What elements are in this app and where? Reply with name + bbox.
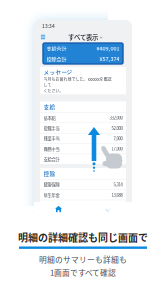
staticText: 13,688 <box>111 192 122 198</box>
staticText: 5,314 <box>113 181 122 187</box>
staticText: ¥409,001 <box>96 44 119 52</box>
staticText: 明細の詳細確認も同じ画面で <box>18 230 148 244</box>
staticText: 52,000 <box>111 125 122 131</box>
staticText: 役職手当 <box>44 125 60 131</box>
staticText: 残業手当 <box>44 135 60 141</box>
staticText: 明細のサマリーも詳細も <box>39 254 127 265</box>
staticText: 健康保険 <box>44 181 60 187</box>
staticText: 7,000 <box>113 135 122 141</box>
staticText: ¥57,374 <box>99 55 119 63</box>
staticText: 17,000 <box>111 146 122 152</box>
button[interactable]: 給与明細 <box>34 202 83 216</box>
staticText: 雇用保険料 <box>44 202 64 208</box>
staticText: 控除合計 <box>47 55 67 62</box>
staticText: 職務手当 <box>44 146 60 152</box>
staticText: 1画面ですべて確認 <box>50 267 116 278</box>
button[interactable]: メニュー <box>38 32 47 41</box>
staticText: 厚生年金 <box>44 192 60 198</box>
staticText: 支給合計 <box>44 156 60 162</box>
staticText: すべて表示 <box>68 32 98 42</box>
staticText: メッセージ <box>44 68 73 76</box>
staticText: 13:34 <box>42 22 55 29</box>
staticText: 支給合計 <box>47 45 67 52</box>
button[interactable]: ダウンロード <box>83 202 132 216</box>
staticText: 支給 <box>44 103 56 111</box>
staticText: 基本給 <box>44 115 56 121</box>
staticText: 332,000 <box>109 115 122 121</box>
staticText: 控除 <box>44 169 56 178</box>
staticText: 今月もお疲れ様でした。XXXXXXを確認して ください。 <box>44 76 112 94</box>
